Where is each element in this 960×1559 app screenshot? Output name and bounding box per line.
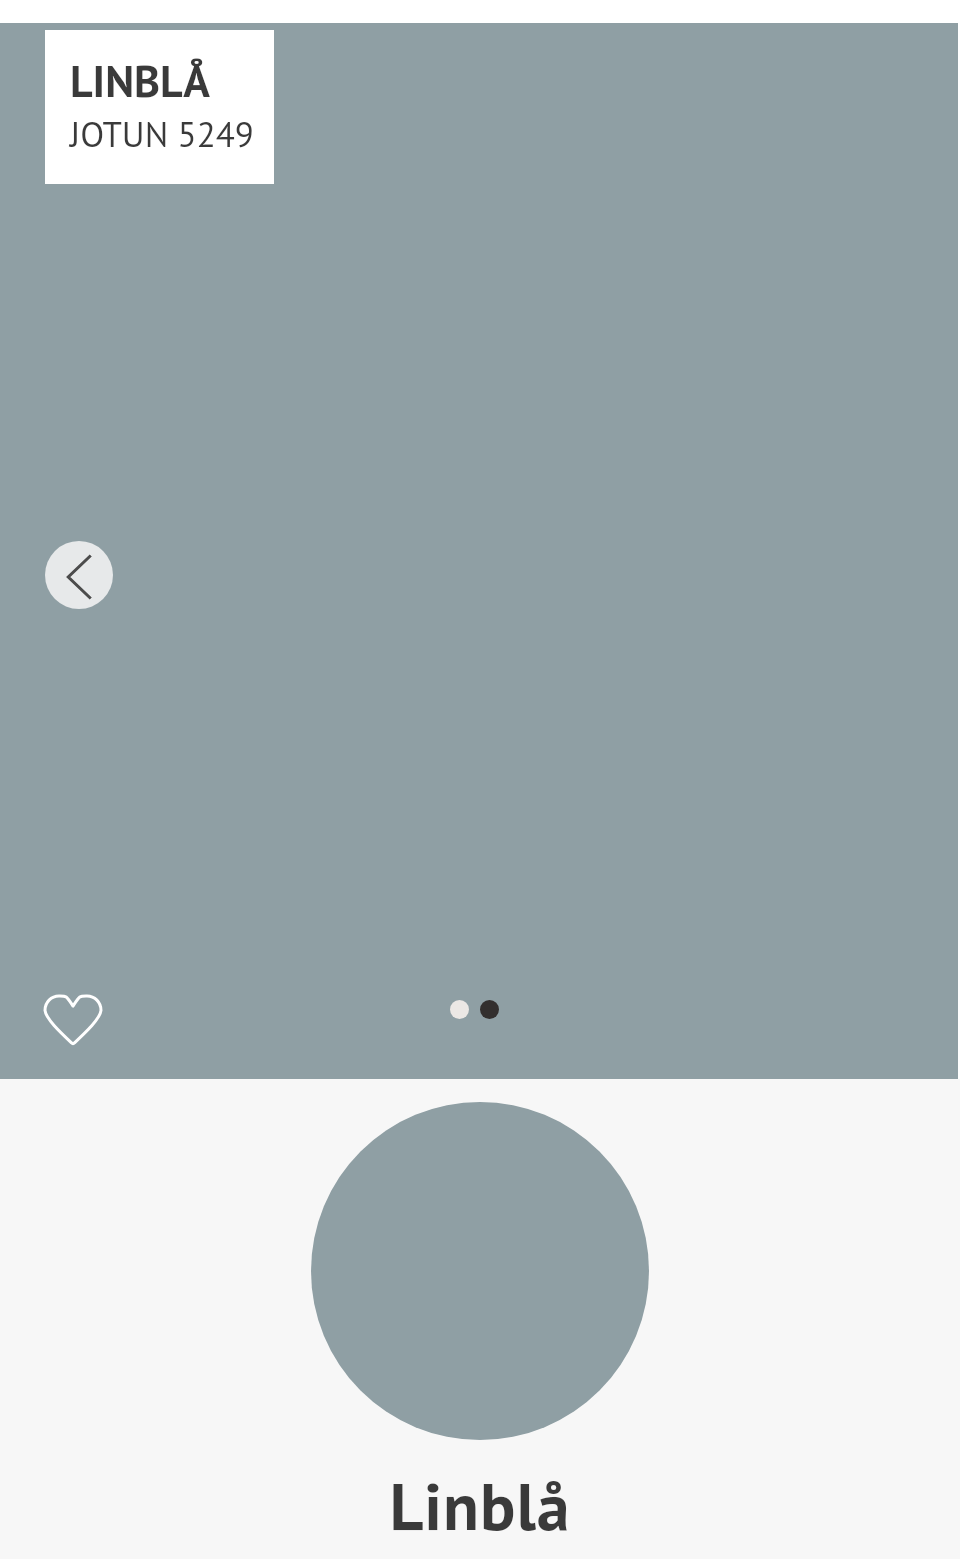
button[interactable]: LINBLÅ <box>45 30 274 184</box>
staticText: LINBLÅ <box>70 52 210 109</box>
staticText: JOTUN 5249 <box>70 111 254 156</box>
button[interactable]: Linblå colour sample <box>311 1102 649 1440</box>
button[interactable]: Show room photo <box>450 1000 469 1019</box>
button[interactable]: Show colour swatch <box>480 1000 499 1019</box>
button[interactable]: Add to favourites <box>37 988 109 1052</box>
staticText: Linblå <box>389 1463 571 1548</box>
button[interactable]: Back <box>45 541 113 609</box>
